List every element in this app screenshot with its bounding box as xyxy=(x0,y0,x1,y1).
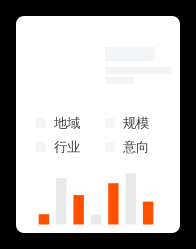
staticText: 地域 xyxy=(54,115,80,131)
button[interactable]: 意向 xyxy=(104,139,162,155)
button[interactable]: 行业 xyxy=(35,139,93,155)
staticText: 意向 xyxy=(123,139,149,155)
staticText: 行业 xyxy=(54,139,80,155)
button[interactable]: 规模 xyxy=(104,115,162,131)
staticText: 规模 xyxy=(123,115,149,131)
button[interactable]: 地域 xyxy=(35,115,93,131)
